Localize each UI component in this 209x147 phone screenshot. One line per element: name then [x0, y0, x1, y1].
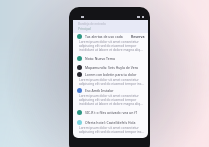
staticText: Tus alertas de uso cada — [85, 34, 123, 39]
staticText: SIC-R t o files activado: vea un f1 — [85, 110, 138, 115]
button[interactable]: Eso Amtk Instalar — [73, 88, 148, 106]
staticText: Reserva — [131, 34, 145, 39]
staticText: Lorem ipsum dolor sit amet consectetur a… — [79, 94, 144, 106]
staticText: Lorem con boletin para tu dolor — [85, 72, 137, 77]
button[interactable]: Mapamundis: Sets Huyla de Vera — [73, 65, 148, 70]
button[interactable]: SIC-R t o files activado: vea un f1 — [73, 110, 148, 115]
staticText: Eso Amtk Instalar — [85, 88, 114, 93]
button[interactable]: Bandeja de entrada — [78, 22, 106, 26]
staticText: Mapamundis: Sets Huyla de Vera — [85, 65, 139, 70]
staticText: Lorem ipsum dolor sit amet consectetur a… — [79, 78, 144, 86]
button[interactable]: Oferta hotel: Castelldefels Hola — [73, 120, 148, 134]
button[interactable]: Nota: Nuevo Tema — [73, 56, 148, 61]
button[interactable]: Tus alertas de uso cada — [73, 34, 148, 52]
button[interactable]: Principal — [78, 27, 91, 31]
staticText: Oferta hotel: Castelldefels Hola — [85, 120, 136, 125]
staticText: Lorem ipsum dolor sit amet consectetur a… — [79, 40, 144, 52]
button[interactable]: Lorem con boletin para tu dolor — [73, 72, 148, 86]
staticText: Nota: Nuevo Tema — [85, 56, 115, 61]
staticText: Lorem ipsum dolor sit amet consectetur a… — [79, 126, 144, 134]
